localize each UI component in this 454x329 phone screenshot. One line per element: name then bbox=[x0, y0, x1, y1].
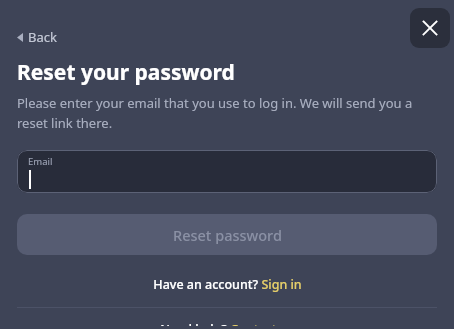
staticText: Need help? Contact us bbox=[160, 321, 294, 326]
button[interactable]: Reset password bbox=[17, 214, 437, 255]
staticText: Reset password bbox=[173, 225, 282, 245]
button[interactable]: Close bbox=[410, 8, 450, 48]
button[interactable]: Need help? Contact us bbox=[154, 318, 300, 329]
button[interactable]: Have an account? Sign in bbox=[147, 273, 308, 296]
staticText: Back bbox=[28, 28, 57, 46]
button[interactable]: Back bbox=[14, 26, 60, 48]
staticText: Email bbox=[28, 155, 53, 168]
staticText: Reset your password bbox=[17, 58, 235, 87]
staticText: Please enter your email that you use to … bbox=[17, 94, 416, 132]
button[interactable]: Email bbox=[17, 150, 437, 193]
staticText: Have an account? Sign in bbox=[153, 276, 302, 293]
